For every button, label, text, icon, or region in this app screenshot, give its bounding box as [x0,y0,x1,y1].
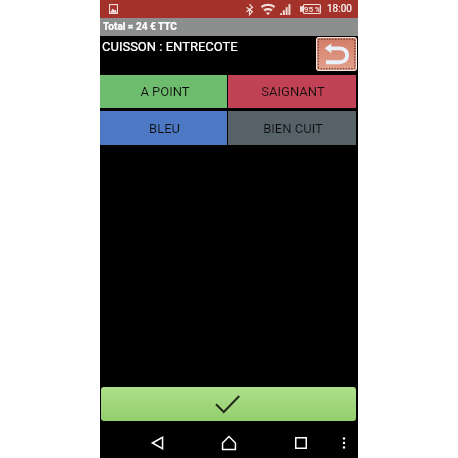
staticText: SAIGNANT [261,84,325,99]
button[interactable]: Home [217,431,241,455]
button[interactable]: Valider [101,387,356,421]
staticText: BLEU [149,121,180,136]
staticText: 95 % [304,5,321,14]
button[interactable]: BLEU [100,111,227,145]
staticText: A POINT [140,84,190,99]
button[interactable]: More options [332,431,356,455]
staticText: Total = 24 € TTC [103,21,177,33]
staticText: BIEN CUIT [263,121,323,136]
button[interactable]: BIEN CUIT [228,111,356,145]
button[interactable]: Retour [316,37,357,71]
button[interactable]: A POINT [100,75,227,108]
staticText: 18:00 [327,3,352,15]
staticText: CUISSON : ENTRECOTE [102,39,238,54]
button[interactable]: Recent apps [289,431,313,455]
button[interactable]: SAIGNANT [228,75,356,108]
button[interactable]: Back [145,431,169,455]
